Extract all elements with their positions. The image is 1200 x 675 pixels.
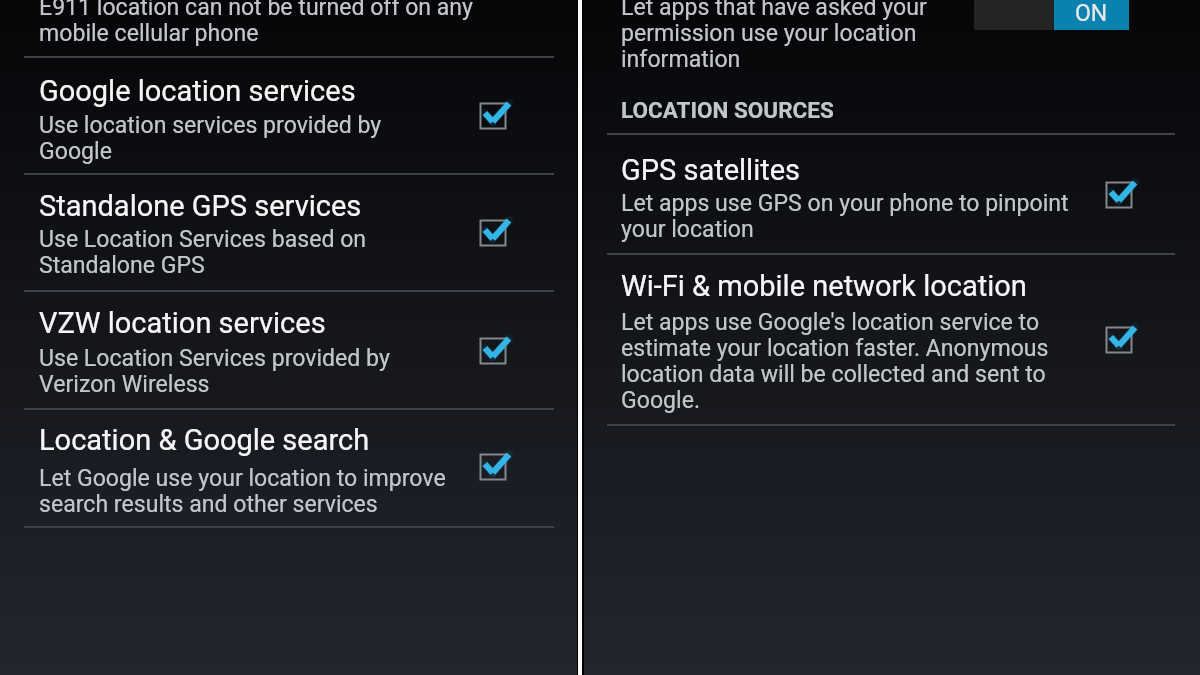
- button[interactable]: Wi-Fi & mobile network location: [583, 255, 1200, 423]
- staticText: Let Google use your location to improve …: [39, 465, 446, 518]
- staticText: Let apps that have asked your permission…: [621, 0, 927, 73]
- staticText: E911 location can not be turned off on a…: [39, 0, 474, 47]
- button[interactable]: Standalone GPS services: [0, 175, 577, 290]
- other: GPS satellites checkbox, checked: [1091, 167, 1147, 223]
- staticText: VZW location services: [39, 306, 326, 340]
- other: VZW location services checkbox, checked: [465, 323, 521, 379]
- staticText: Use location services provided by Google: [39, 112, 382, 165]
- other: Wi-Fi & mobile network location checkbox…: [1091, 312, 1147, 368]
- button[interactable]: Location & Google search: [0, 410, 577, 525]
- staticText: Wi-Fi & mobile network location: [621, 269, 1027, 303]
- button[interactable]: VZW location services: [0, 292, 577, 408]
- staticText: Standalone GPS services: [39, 189, 362, 223]
- staticText: Let apps use Google's location service t…: [621, 309, 1049, 414]
- staticText: Google location services: [39, 74, 356, 108]
- staticText: LOCATION SOURCES: [621, 97, 834, 123]
- staticText: Let apps use GPS on your phone to pinpoi…: [621, 190, 1069, 243]
- staticText: Use Location Services provided by Verizo…: [39, 345, 390, 398]
- staticText: Use Location Services based on Standalon…: [39, 226, 367, 279]
- other: Google location services checkbox, check…: [465, 88, 521, 144]
- button[interactable]: Google location services: [0, 57, 577, 173]
- other: Location & Google search checkbox, check…: [465, 439, 521, 495]
- button[interactable]: Access to my location, on: [974, 0, 1129, 30]
- staticText: ON: [1075, 0, 1108, 27]
- button[interactable]: GPS satellites: [583, 135, 1200, 253]
- staticText: GPS satellites: [621, 153, 801, 187]
- staticText: Location & Google search: [39, 423, 370, 457]
- other: Standalone GPS services checkbox, checke…: [465, 205, 521, 261]
